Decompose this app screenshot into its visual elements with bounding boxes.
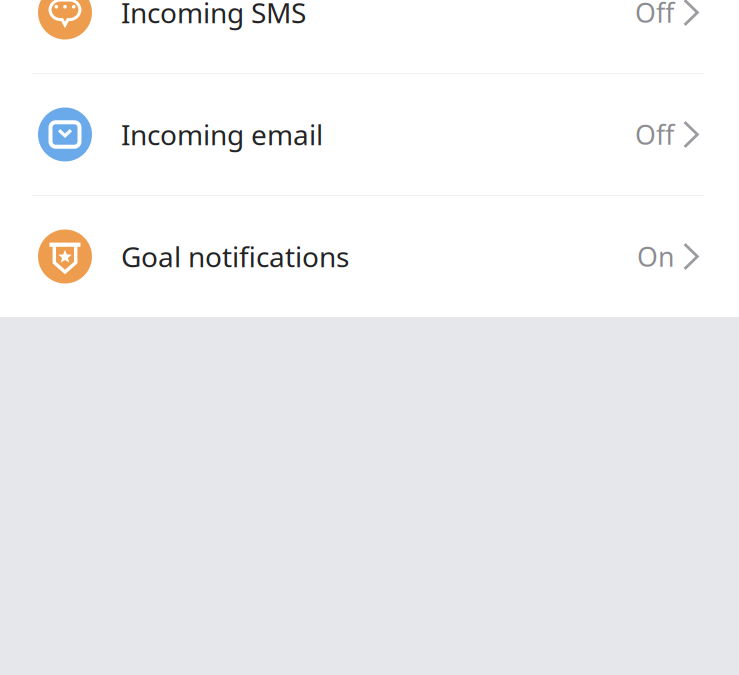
button[interactable]: Incoming email xyxy=(0,74,739,195)
staticText: Off xyxy=(635,117,674,152)
staticText: On xyxy=(637,239,674,274)
button[interactable]: Goal notifications xyxy=(0,196,739,317)
staticText: Goal notifications xyxy=(121,238,349,275)
staticText: Off xyxy=(635,0,674,30)
button[interactable]: Incoming SMS xyxy=(0,0,739,73)
staticText: Incoming SMS xyxy=(121,0,306,31)
staticText: Incoming email xyxy=(121,116,323,153)
